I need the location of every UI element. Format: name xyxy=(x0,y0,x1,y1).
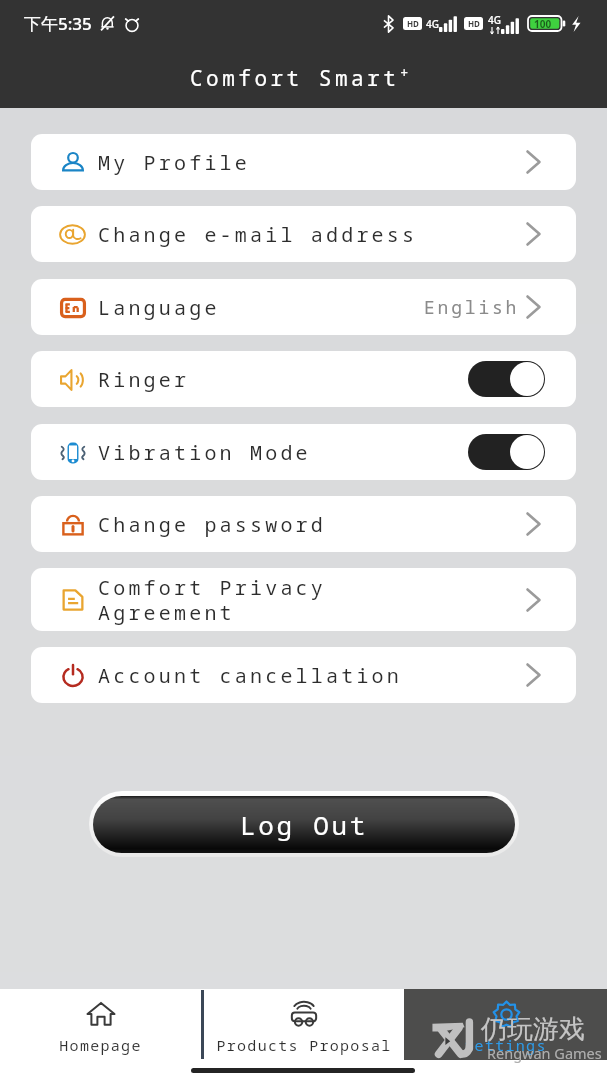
staticText: 下午5:35 xyxy=(24,12,92,35)
staticText: Account cancellation xyxy=(98,662,402,689)
staticText: Homepage xyxy=(59,1035,142,1055)
staticText: + xyxy=(400,63,409,82)
staticText: English xyxy=(424,295,520,320)
staticText: 4G xyxy=(488,13,501,27)
button[interactable]: Change e-mail address xyxy=(31,206,576,262)
staticText: Language xyxy=(98,294,220,321)
staticText: Settings xyxy=(464,1035,547,1055)
staticText: Vibration Mode xyxy=(98,439,311,466)
staticText: Comfort Privacy Agreement xyxy=(98,574,326,626)
staticText: 4G xyxy=(426,17,439,31)
button[interactable]: Ringer xyxy=(31,351,576,407)
staticText: Log Out xyxy=(240,807,369,842)
button[interactable]: Products Proposal xyxy=(204,989,404,1060)
button[interactable]: Log Out xyxy=(93,796,515,853)
staticText: Change password xyxy=(98,511,326,538)
staticText: HD xyxy=(407,18,419,29)
button[interactable]: Vibration Mode xyxy=(31,424,576,480)
button[interactable]: Toggle Ringer xyxy=(468,361,545,397)
staticText: Change e-mail address xyxy=(98,221,418,248)
staticText: HD xyxy=(468,18,480,29)
button[interactable]: Change password xyxy=(31,496,576,552)
staticText: Ringer xyxy=(98,366,190,393)
staticText: 100 xyxy=(534,17,552,31)
staticText: 仍玩游戏 xyxy=(481,1013,585,1046)
button[interactable]: Language xyxy=(31,279,576,335)
staticText: My Profile xyxy=(98,149,250,176)
staticText: Comfort Smart xyxy=(190,64,400,93)
button[interactable]: Comfort Privacy Agreement xyxy=(31,568,576,631)
button[interactable]: Settings xyxy=(404,989,607,1060)
staticText: Rengwan Games xyxy=(487,1043,602,1063)
button[interactable]: Toggle Vibration Mode xyxy=(468,434,545,470)
button[interactable]: My Profile xyxy=(31,134,576,190)
staticText: Products Proposal xyxy=(216,1035,392,1055)
button[interactable]: Account cancellation xyxy=(31,647,576,703)
button[interactable]: Homepage xyxy=(0,989,201,1060)
